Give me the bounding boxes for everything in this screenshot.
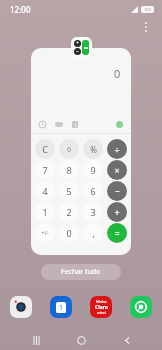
button[interactable]: ÷ — [107, 139, 127, 159]
staticText: 6 — [90, 185, 96, 197]
button[interactable]: + — [107, 202, 127, 222]
button[interactable]: 6 — [83, 181, 103, 201]
button[interactable]: Minha Claro — [90, 296, 112, 318]
button[interactable]: Back — [117, 330, 137, 350]
staticText: + — [76, 40, 79, 47]
staticText: 0 — [114, 66, 121, 81]
staticText: 1 — [59, 303, 64, 313]
staticText: 8 — [66, 164, 72, 176]
staticText: móvel — [97, 311, 106, 315]
staticText: Fechar tudo — [61, 267, 101, 277]
button[interactable]: 0 — [31, 48, 131, 255]
button[interactable]: Fechar tudo — [41, 264, 121, 280]
button[interactable]: 0 — [59, 223, 79, 243]
staticText: C — [42, 143, 48, 155]
staticText: 1 — [42, 206, 48, 218]
staticText: Minha — [96, 299, 107, 304]
button[interactable]: , — [83, 223, 103, 243]
button[interactable]: () — [59, 139, 79, 159]
staticText: − — [76, 48, 79, 55]
button[interactable]: 5 — [59, 181, 79, 201]
staticText: 9 — [90, 164, 96, 176]
staticText: () — [67, 145, 71, 153]
button[interactable]: 1 — [35, 202, 55, 222]
staticText: 7 — [42, 164, 48, 176]
staticText: 4 — [42, 185, 48, 197]
staticText: , — [92, 228, 95, 239]
staticText: 100 — [144, 7, 151, 12]
button[interactable]: Calendar — [50, 296, 72, 318]
staticText: − — [114, 185, 120, 197]
button[interactable]: Camera — [10, 296, 32, 318]
button[interactable]: Home — [71, 330, 91, 350]
button[interactable]: Calculator app icon — [71, 37, 92, 58]
button[interactable]: 7 — [35, 160, 55, 180]
staticText: = — [114, 227, 120, 239]
button[interactable]: More options — [139, 22, 153, 36]
staticText: + — [114, 206, 120, 218]
button[interactable]: % — [83, 139, 103, 159]
button[interactable]: = — [107, 223, 127, 243]
button[interactable]: × — [107, 160, 127, 180]
button[interactable]: 9 — [83, 160, 103, 180]
staticText: 5 — [66, 185, 72, 197]
button[interactable]: 4 — [35, 181, 55, 201]
staticText: +/- — [41, 229, 49, 237]
staticText: 12:00 — [10, 4, 31, 15]
button[interactable]: Convert — [116, 121, 123, 128]
button[interactable]: 8 — [59, 160, 79, 180]
staticText: 2 — [66, 206, 72, 218]
staticText: ÷ — [114, 143, 120, 155]
staticText: Claro — [95, 304, 108, 311]
button[interactable]: +/- — [35, 223, 55, 243]
button[interactable]: 3 — [83, 202, 103, 222]
button[interactable]: C — [35, 139, 55, 159]
staticText: × — [114, 164, 120, 176]
staticText: % — [90, 144, 97, 155]
button[interactable]: 2 — [59, 202, 79, 222]
staticText: 0 — [66, 227, 72, 239]
button[interactable]: Recents — [26, 330, 46, 350]
button[interactable]: WhatsApp — [130, 296, 152, 318]
button[interactable]: − — [107, 181, 127, 201]
staticText: 3 — [90, 206, 96, 218]
